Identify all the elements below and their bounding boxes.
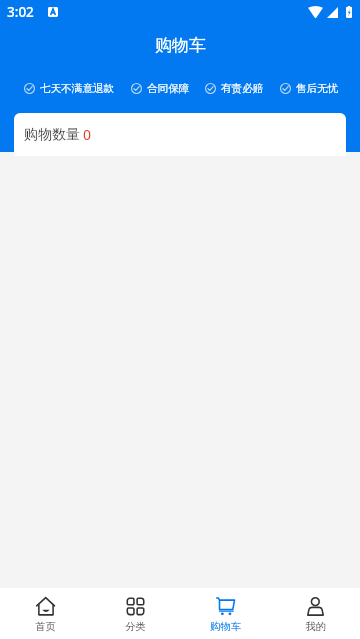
button[interactable]: 售后无忧 — [280, 82, 339, 95]
staticText: 购物车 — [155, 35, 206, 56]
staticText: 七天不满意退款 — [40, 82, 115, 95]
staticText: 0 — [83, 125, 92, 144]
button[interactable]: 我的 — [270, 588, 360, 639]
staticText: 售后无忧 — [296, 82, 339, 95]
staticText: 购物车 — [210, 620, 241, 633]
button[interactable]: 分类 — [90, 588, 180, 639]
button[interactable]: 有责必赔 — [205, 82, 264, 95]
staticText: 首页 — [35, 620, 56, 633]
staticText: 分类 — [125, 620, 146, 633]
button[interactable]: 首页 — [0, 588, 90, 639]
staticText: 合同保障 — [147, 82, 190, 95]
button[interactable]: 七天不满意退款 — [24, 82, 115, 95]
button[interactable]: 购物车 — [180, 588, 270, 639]
button[interactable]: 合同保障 — [131, 82, 190, 95]
button[interactable]: 购物数量 — [14, 113, 346, 156]
staticText: 我的 — [305, 620, 326, 633]
staticText: 3:02 — [7, 3, 34, 21]
staticText: 有责必赔 — [221, 82, 264, 95]
staticText: 购物数量 — [24, 126, 80, 144]
